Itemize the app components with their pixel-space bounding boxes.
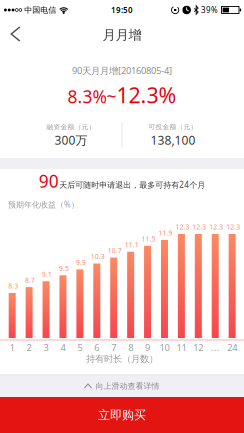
staticText: 1	[10, 341, 15, 354]
staticText: 12.3	[192, 223, 206, 231]
staticText: 4	[60, 341, 65, 354]
staticText: 7	[111, 341, 116, 354]
staticText: 3	[43, 341, 48, 354]
staticText: 5	[77, 341, 82, 354]
staticText: 138,100	[150, 132, 195, 148]
staticText: 中国电信	[24, 5, 56, 15]
staticText: 24	[227, 341, 237, 354]
staticText: 12	[193, 341, 203, 354]
staticText: 90天月月增[20160805-4]	[72, 64, 172, 77]
staticText: 8.7	[25, 276, 35, 285]
button[interactable]: 立即购买	[0, 397, 244, 433]
button[interactable]: 向上滑动查看详情	[0, 374, 244, 397]
button[interactable]	[5, 21, 26, 47]
staticText: 立即购买	[98, 408, 146, 422]
staticText: 10.7	[108, 246, 122, 255]
staticText: 12.3	[175, 223, 189, 231]
staticText: 11.5	[142, 234, 156, 243]
staticText: 8.3%~12.3%	[67, 81, 176, 109]
staticText: 月月增	[102, 27, 141, 43]
staticText: 9.5	[59, 264, 69, 273]
staticText: 6	[94, 341, 99, 354]
staticText: 12.3	[209, 223, 223, 231]
staticText: 10	[159, 341, 169, 354]
staticText: 10.3	[91, 252, 105, 261]
staticText: 19:50	[111, 5, 133, 15]
staticText: 9.1	[42, 270, 52, 279]
staticText: 11.9	[158, 228, 172, 237]
staticText: 8.3	[8, 282, 18, 290]
staticText: 持有时长（月数）	[86, 353, 158, 365]
staticText: 天后可随时申请退出，最多可持有24个月	[59, 179, 205, 190]
staticText: 8	[128, 341, 133, 354]
staticText: 预期年化收益（%）	[8, 199, 79, 210]
staticText: ...	[211, 341, 220, 354]
staticText: 融资金额（元）	[46, 123, 95, 131]
staticText: 可投金额（元）	[148, 123, 197, 131]
staticText: 9.9	[76, 258, 86, 267]
staticText: 2	[27, 341, 32, 354]
staticText: 向上滑动查看详情	[95, 381, 159, 391]
staticText: 12.3	[226, 223, 240, 231]
staticText: 90	[39, 169, 59, 192]
staticText: 9	[145, 341, 150, 354]
staticText: 39%	[201, 5, 218, 15]
staticText: 11.1	[125, 240, 139, 249]
staticText: 300万	[54, 132, 87, 148]
staticText: 11	[176, 341, 186, 354]
